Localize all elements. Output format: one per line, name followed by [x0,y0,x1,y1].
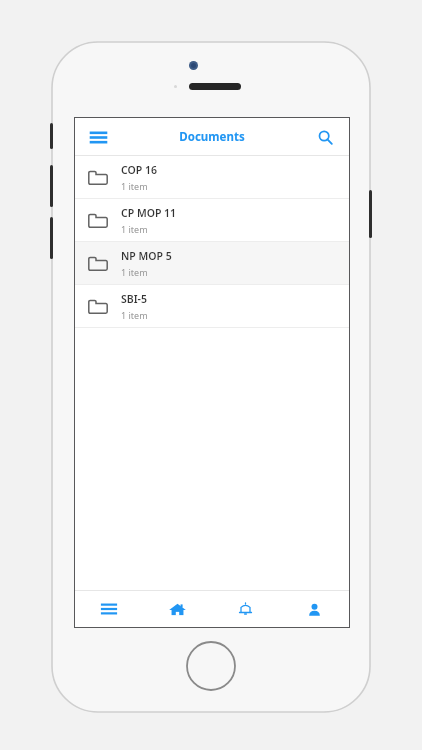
staticText: CP MOP 11 [121,206,177,220]
staticText: COP 16 [121,163,157,177]
button[interactable]: CP MOP 11 [75,199,349,241]
staticText: 1 item [121,309,148,321]
button[interactable]: Notifications [211,591,280,627]
button[interactable]: Home [143,591,211,627]
button[interactable]: Menu [75,591,143,627]
staticText: 1 item [121,266,148,278]
button[interactable]: SBI-5 [75,285,349,327]
staticText: NP MOP 5 [121,249,172,263]
staticText: 1 item [121,180,148,192]
button[interactable]: Profile [280,591,349,627]
button[interactable]: Search [309,121,341,153]
staticText: Documents [179,129,245,145]
button[interactable]: Menu [82,121,114,153]
staticText: 1 item [121,223,148,235]
staticText: SBI-5 [121,292,147,306]
button[interactable]: COP 16 [75,156,349,198]
button[interactable]: NP MOP 5 [75,242,349,284]
